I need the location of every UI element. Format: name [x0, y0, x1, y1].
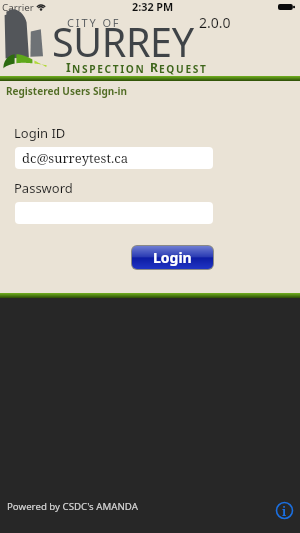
- staticText: Login: [153, 248, 192, 267]
- staticText: 2:32 PM: [132, 0, 174, 12]
- staticText: EQUEST: [159, 62, 208, 76]
- staticText: SURREY: [52, 15, 194, 69]
- staticText: Carrier: [2, 1, 34, 14]
- button[interactable]: Login: [132, 246, 213, 269]
- staticText: R: [150, 59, 159, 76]
- staticText: Password: [14, 179, 73, 197]
- staticText: Registered Users Sign-in: [6, 84, 127, 98]
- staticText: 2.0.0: [199, 13, 231, 32]
- staticText: NSPECTION: [72, 62, 150, 76]
- staticText: I: [66, 59, 72, 76]
- staticText: CITY OF: [67, 15, 121, 30]
- staticText: Powered by CSDC's AMANDA: [7, 500, 138, 513]
- button[interactable]: Info: [275, 501, 294, 520]
- staticText: dc@surreytest.ca: [22, 149, 128, 167]
- staticText: i: [282, 503, 287, 519]
- staticText: Login ID: [14, 124, 66, 142]
- button[interactable]: dc@surreytest.ca: [15, 147, 213, 169]
